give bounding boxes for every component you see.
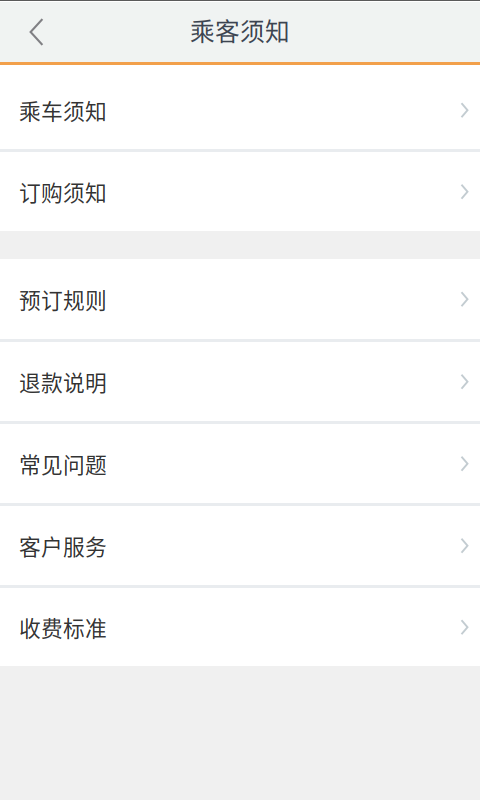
- staticText: 乘车须知: [19, 94, 107, 126]
- button[interactable]: 收费标准: [0, 588, 480, 666]
- staticText: 收费标准: [19, 611, 107, 643]
- button[interactable]: 常见问题: [0, 424, 480, 503]
- button[interactable]: 客户服务: [0, 506, 480, 585]
- button[interactable]: 返回: [0, 2, 59, 62]
- staticText: 常见问题: [19, 448, 107, 479]
- button[interactable]: 订购须知: [0, 152, 480, 231]
- button[interactable]: 退款说明: [0, 342, 480, 421]
- button[interactable]: 乘车须知: [0, 65, 480, 149]
- staticText: 预订规则: [19, 283, 107, 315]
- button[interactable]: 预订规则: [0, 259, 480, 339]
- staticText: 乘客须知: [190, 12, 290, 48]
- staticText: 订购须知: [19, 176, 107, 207]
- staticText: 退款说明: [19, 366, 107, 397]
- staticText: 客户服务: [19, 530, 107, 561]
